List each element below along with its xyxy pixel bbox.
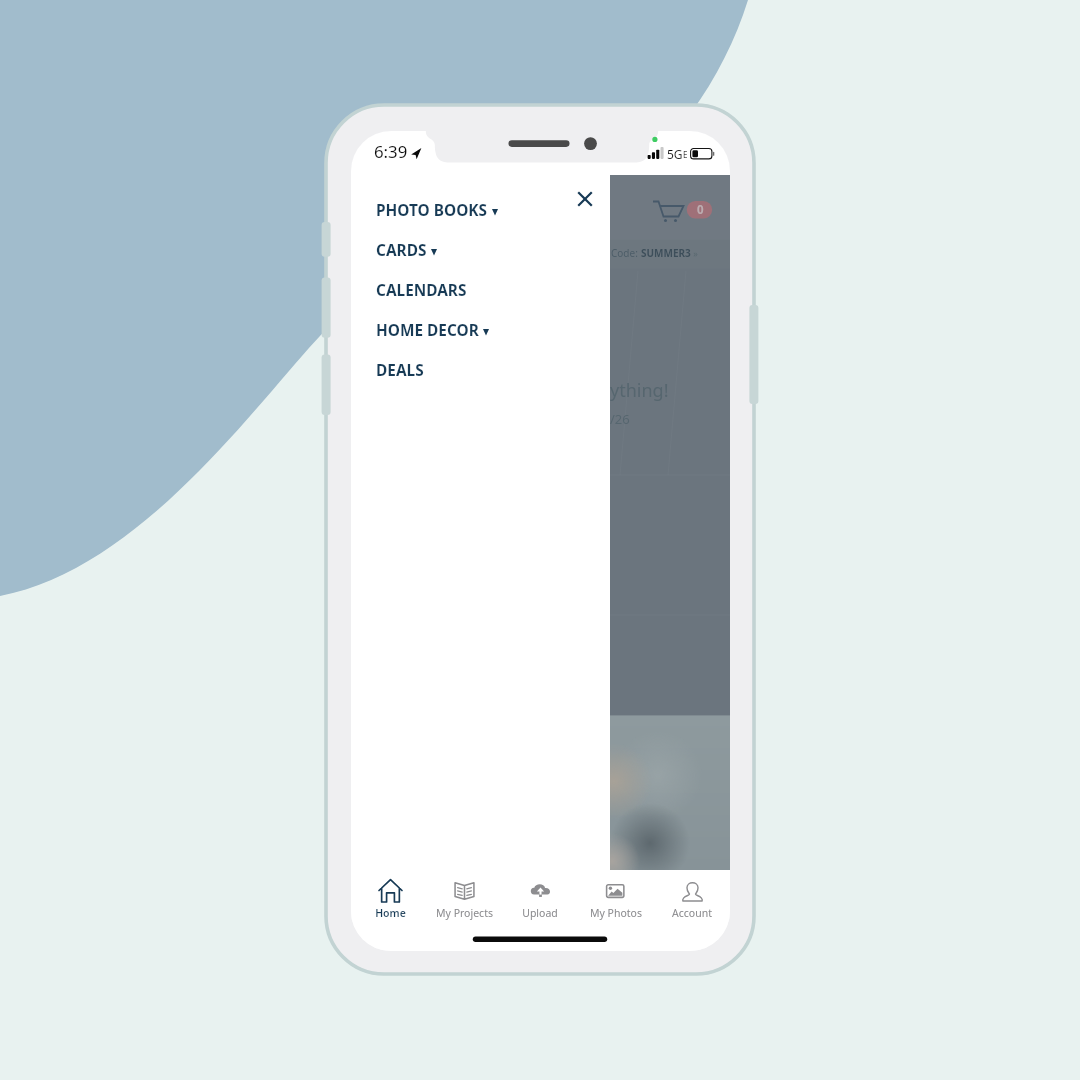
- staticText: Account: [672, 906, 712, 920]
- staticText: PHOTO BOOKS: [376, 200, 488, 221]
- button[interactable]: HOME DECOR: [351, 310, 610, 350]
- button[interactable]: Close menu: [573, 187, 597, 211]
- button[interactable]: Upload: [502, 871, 578, 929]
- staticText: 6:39: [374, 140, 408, 163]
- staticText: /26: [610, 410, 630, 428]
- staticText: »: [691, 247, 698, 259]
- staticText: HOME DECOR: [376, 320, 479, 341]
- staticText: Home: [375, 906, 406, 920]
- staticText: E: [683, 149, 688, 160]
- button[interactable]: Home: [351, 871, 427, 929]
- button[interactable]: My Projects: [427, 871, 502, 929]
- staticText: SUMMER3: [641, 246, 691, 260]
- button[interactable]: DEALS: [351, 350, 610, 390]
- button[interactable]: PHOTO BOOKS: [351, 190, 610, 230]
- staticText: CARDS: [376, 240, 427, 261]
- staticText: 0: [697, 202, 704, 218]
- button[interactable]: CALENDARS: [351, 270, 610, 310]
- staticText: ything!: [610, 378, 669, 403]
- staticText: CALENDARS: [376, 280, 467, 301]
- button[interactable]: Account: [654, 871, 729, 929]
- staticText: DEALS: [376, 360, 424, 381]
- staticText: Upload: [522, 906, 558, 920]
- button[interactable]: CARDS: [351, 230, 610, 270]
- staticText: My Photos: [590, 906, 642, 920]
- staticText: 5G: [667, 146, 683, 162]
- staticText: Code:: [611, 246, 641, 260]
- button[interactable]: My Photos: [578, 871, 654, 929]
- staticText: My Projects: [436, 906, 493, 920]
